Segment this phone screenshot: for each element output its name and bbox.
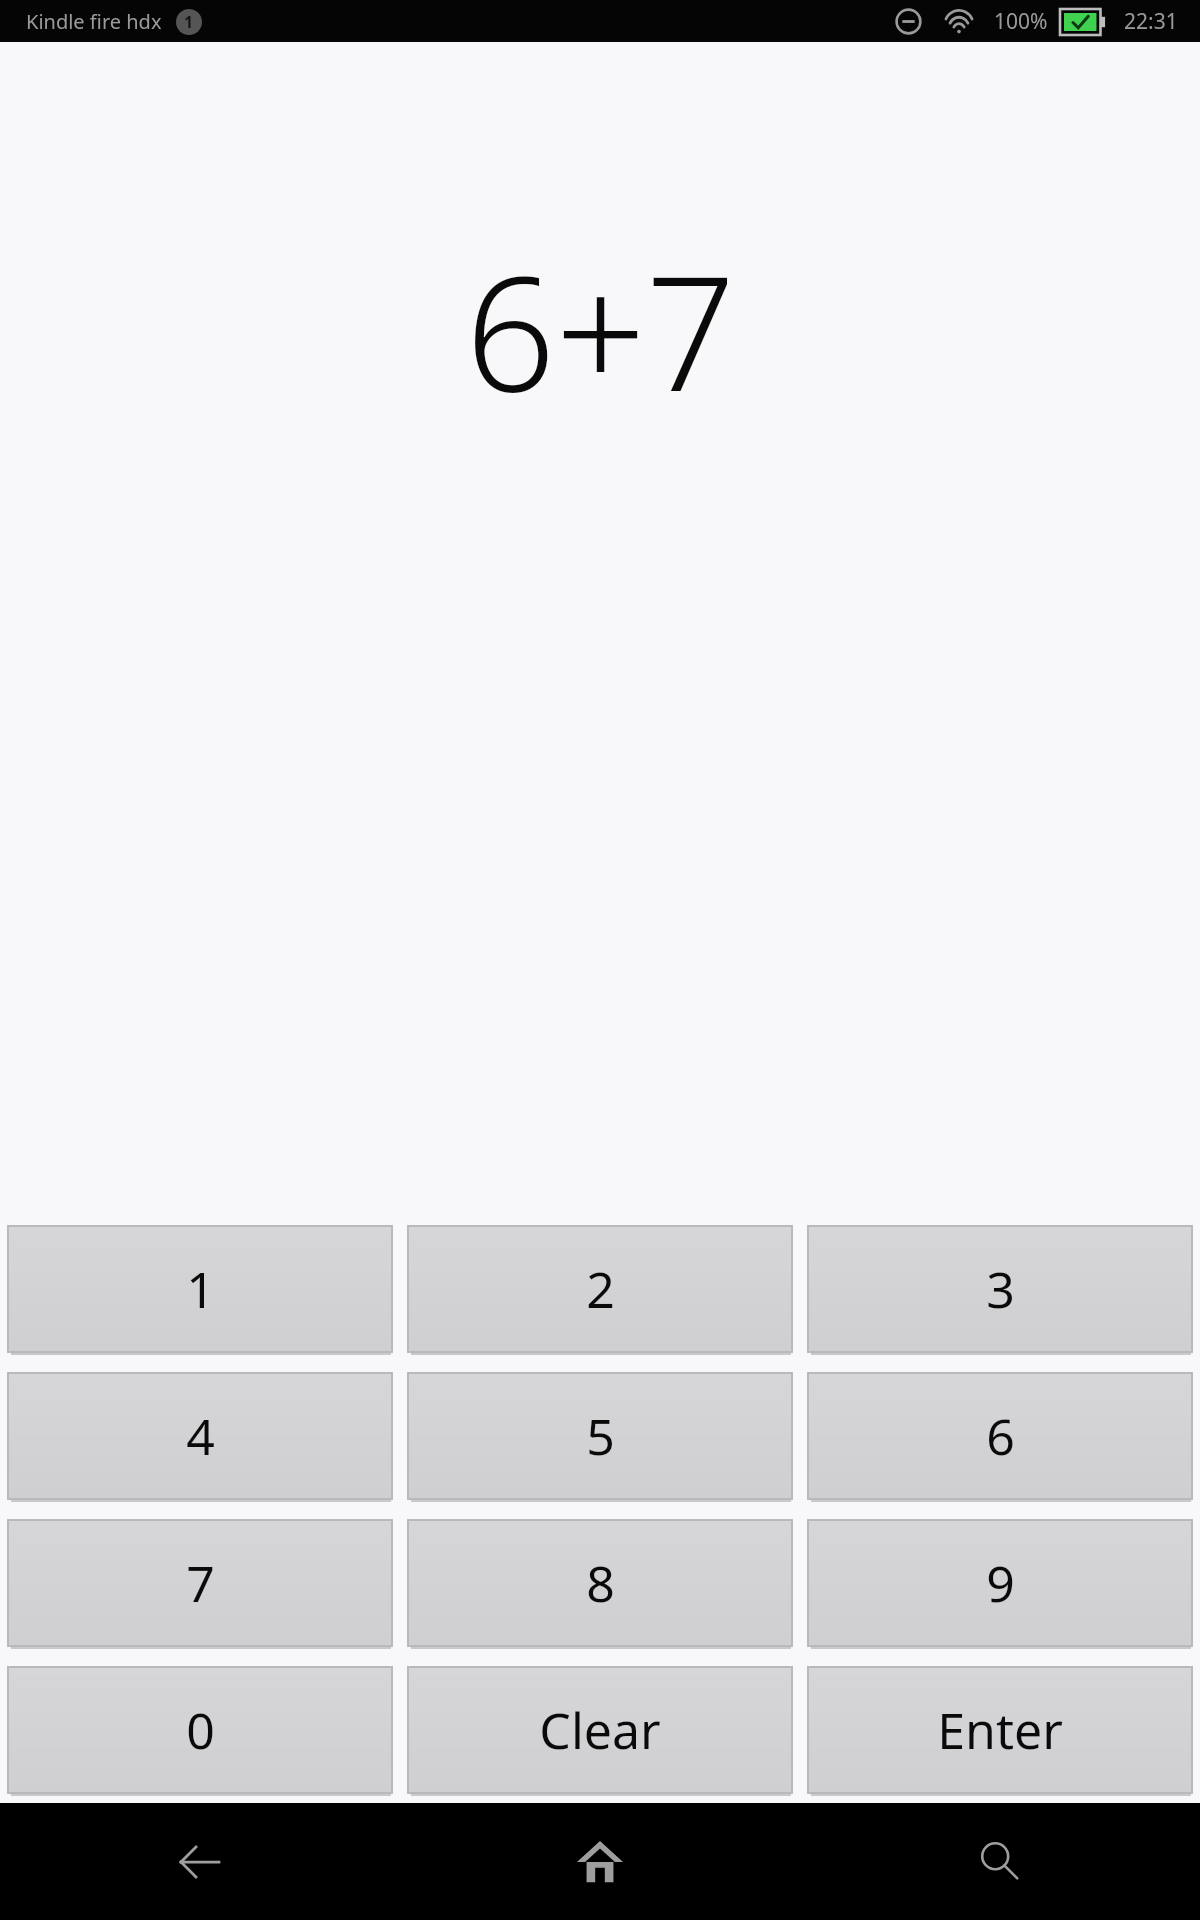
button[interactable]: Home <box>400 1803 800 1920</box>
staticText: 7 <box>186 1549 215 1617</box>
staticText: 22:31 <box>1124 7 1178 36</box>
button[interactable]: 9 <box>808 1520 1192 1646</box>
staticText: 5 <box>586 1402 615 1470</box>
staticText: 8 <box>586 1549 615 1617</box>
staticText: 9 <box>986 1549 1015 1617</box>
button[interactable]: Back <box>0 1803 400 1920</box>
staticText: Enter <box>937 1696 1063 1764</box>
button[interactable]: 4 <box>8 1373 392 1499</box>
button[interactable]: 6 <box>808 1373 1192 1499</box>
staticText: Kindle fire hdx <box>26 8 162 35</box>
staticText: Clear <box>539 1696 661 1764</box>
staticText: 1 <box>186 1255 215 1323</box>
staticText: 1 <box>184 11 194 33</box>
staticText: 0 <box>186 1696 215 1764</box>
button[interactable]: Clear <box>408 1667 792 1793</box>
button[interactable]: 0 <box>8 1667 392 1793</box>
button[interactable]: 2 <box>408 1226 792 1352</box>
staticText: 100% <box>994 7 1048 36</box>
staticText: 6 <box>986 1402 1015 1470</box>
button[interactable]: 5 <box>408 1373 792 1499</box>
button[interactable]: Enter <box>808 1667 1192 1793</box>
staticText: 2 <box>586 1255 615 1323</box>
button[interactable]: 3 <box>808 1226 1192 1352</box>
button[interactable]: 7 <box>8 1520 392 1646</box>
staticText: 3 <box>986 1255 1015 1323</box>
staticText: 4 <box>186 1402 215 1470</box>
button[interactable]: 1 <box>8 1226 392 1352</box>
button[interactable]: Search <box>800 1803 1200 1920</box>
staticText: 6+7 <box>465 222 736 437</box>
button[interactable]: 8 <box>408 1520 792 1646</box>
